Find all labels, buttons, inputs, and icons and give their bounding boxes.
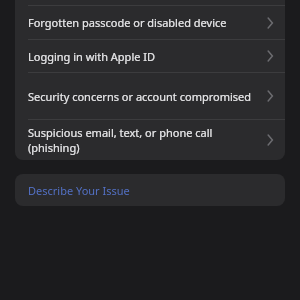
button[interactable]: Forgotten passcode or disabled device — [15, 6, 285, 39]
staticText: Security concerns or account compromised — [28, 89, 257, 104]
other: Security concerns or account compromised — [265, 89, 275, 103]
staticText: Suspicious email, text, or phone call (p… — [28, 125, 257, 155]
button[interactable]: Describe Your Issue — [15, 174, 285, 206]
other: Logging in with Apple ID — [265, 49, 275, 63]
button[interactable]: Logging in with Apple ID — [15, 40, 285, 72]
other: Forgotten passcode or disabled device — [265, 16, 275, 30]
button[interactable]: Suspicious email, text, or phone call (p… — [15, 120, 285, 160]
staticText: Logging in with Apple ID — [28, 49, 257, 64]
button[interactable]: Security concerns or account compromised — [15, 73, 285, 119]
staticText: Forgotten passcode or disabled device — [28, 15, 257, 30]
other: Suspicious email, text, or phone call (p… — [265, 133, 275, 147]
staticText: Describe Your Issue — [28, 183, 130, 198]
